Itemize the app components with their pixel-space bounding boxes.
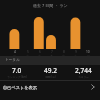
- staticText: 49.2: [44, 66, 57, 75]
- staticText: 9: [75, 50, 77, 54]
- staticText: 10: [86, 50, 90, 54]
- staticText: 7.0: [12, 66, 22, 75]
- staticText: 2,744: [75, 66, 92, 75]
- staticText: 8: [63, 50, 65, 54]
- staticText: 自己ベストを表示: [3, 85, 37, 90]
- staticText: トータル: [5, 58, 20, 63]
- staticText: 金: [62, 54, 65, 58]
- staticText: 木: [50, 54, 53, 58]
- staticText: 水: [38, 54, 41, 58]
- staticText: ランニング (km): [7, 75, 27, 79]
- staticText: 7: [51, 50, 53, 54]
- other: Show personal records: [38, 81, 100, 93]
- staticText: 5: [27, 50, 29, 54]
- staticText: 日: [87, 54, 90, 58]
- staticText: 4: [14, 50, 16, 54]
- button[interactable]: 自己ベストを表示: [0, 81, 100, 93]
- staticText: 過去 7 日間 ・ ラン: [33, 3, 68, 8]
- staticText: カロリー: [78, 75, 89, 78]
- staticText: 6: [39, 50, 41, 54]
- staticText: 月: [13, 54, 16, 58]
- staticText: 土: [74, 54, 77, 58]
- staticText: 火: [26, 54, 29, 58]
- staticText: 時間 (分): [45, 75, 56, 79]
